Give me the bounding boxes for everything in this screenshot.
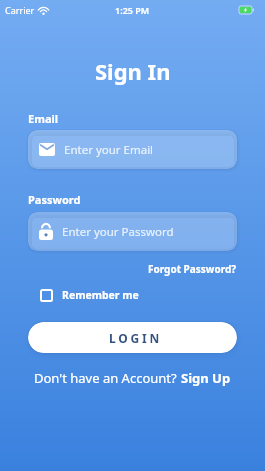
button[interactable]: LOGIN xyxy=(28,322,237,353)
staticText: Sign In xyxy=(95,56,171,86)
staticText: Don't have an Account? xyxy=(34,369,181,387)
staticText: Carrier xyxy=(5,4,35,16)
staticText: Enter your Password xyxy=(62,224,174,240)
staticText: Sign Up xyxy=(181,369,231,387)
staticText: Enter your Email xyxy=(64,142,154,158)
staticText: LOGIN xyxy=(109,330,163,346)
button[interactable]: Enter your Password xyxy=(28,212,237,251)
staticText: Email xyxy=(28,111,59,126)
button[interactable]: Enter your Email xyxy=(28,130,237,169)
button[interactable]: Remember me xyxy=(40,288,139,302)
button[interactable]: Forgot Password? xyxy=(148,262,237,276)
staticText: Forgot Password? xyxy=(148,262,237,276)
button[interactable]: Sign Up xyxy=(181,369,231,387)
staticText: Password xyxy=(28,192,81,207)
staticText: 1:25 PM xyxy=(115,4,150,16)
staticText: Remember me xyxy=(62,288,139,302)
